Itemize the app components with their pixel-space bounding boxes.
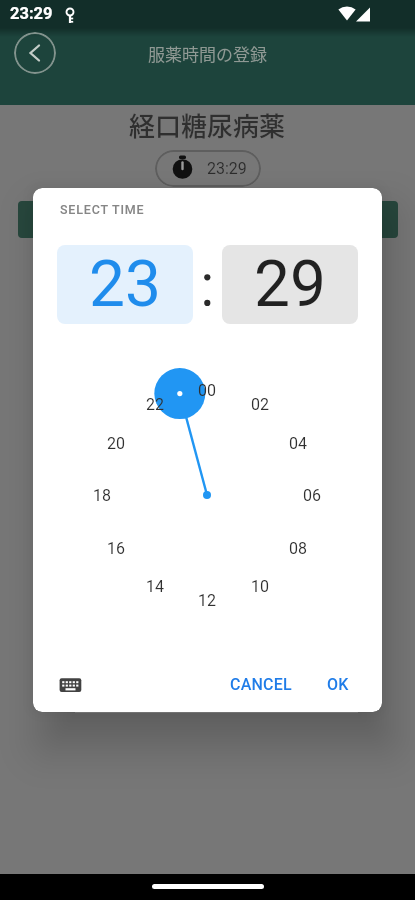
staticText: 14 [146, 577, 164, 596]
staticText: 04 [289, 434, 307, 453]
staticText: 経口糖尿病薬 [129, 106, 286, 144]
staticText: 23 [89, 247, 161, 322]
staticText: 00 [198, 381, 216, 400]
staticText: 02 [251, 395, 269, 414]
button[interactable] [53, 671, 91, 701]
staticText: 20 [107, 434, 125, 453]
staticText: 23:29 [207, 159, 247, 178]
staticText: 10 [251, 577, 269, 596]
staticText: 16 [107, 539, 125, 558]
button[interactable]: CANCEL [226, 671, 296, 698]
staticText: 06 [303, 486, 321, 505]
button[interactable] [18, 201, 398, 238]
staticText: OK [327, 675, 349, 694]
button[interactable]: 29 [222, 245, 358, 324]
button[interactable] [14, 32, 56, 74]
staticText: 22 [146, 395, 164, 414]
button[interactable]: 23:29 [155, 150, 261, 187]
staticText: SELECT TIME [60, 202, 145, 217]
button[interactable]: 23 [57, 245, 193, 324]
staticText: 23:29 [10, 4, 53, 23]
staticText: 08 [289, 539, 307, 558]
staticText: CANCEL [230, 675, 292, 694]
staticText: 12 [198, 591, 216, 610]
staticText: 服薬時間の登録 [148, 41, 267, 66]
button[interactable]: OK [318, 671, 358, 698]
staticText: 18 [93, 486, 111, 505]
staticText: 29 [254, 247, 326, 322]
